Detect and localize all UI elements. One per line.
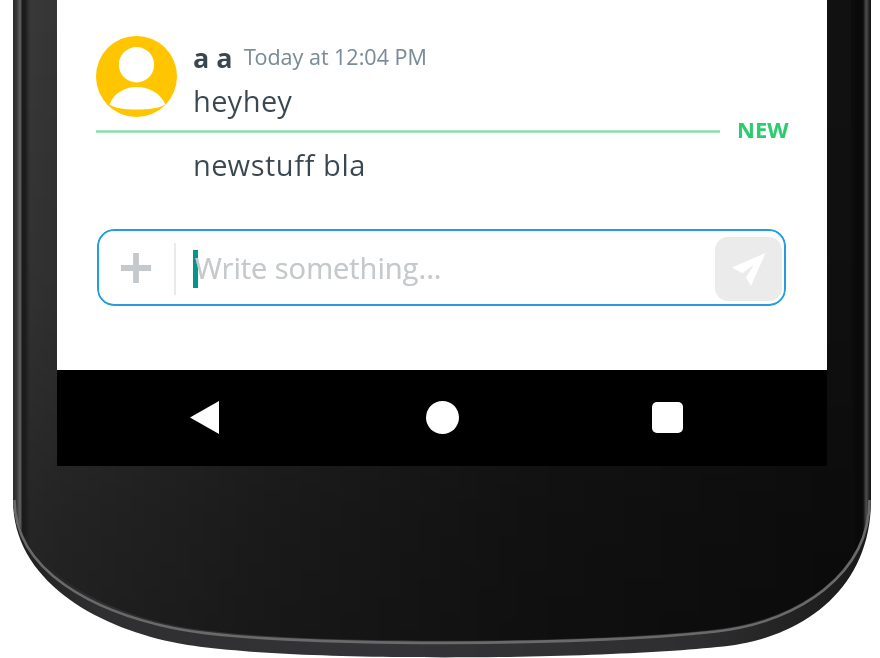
staticText: NEW bbox=[737, 114, 789, 144]
staticText: Write something... bbox=[195, 248, 442, 287]
button[interactable]: Home bbox=[411, 386, 473, 448]
button[interactable]: Back bbox=[173, 386, 235, 448]
button[interactable]: Add attachment bbox=[114, 246, 158, 290]
staticText: Today at 12:04 PM bbox=[244, 42, 427, 71]
staticText: a a bbox=[193, 39, 233, 76]
staticText: newstuff bla bbox=[193, 145, 366, 184]
staticText: heyhey bbox=[193, 81, 293, 120]
button[interactable]: Profile picture bbox=[96, 36, 177, 117]
button[interactable]: Add attachment bbox=[97, 229, 786, 306]
button[interactable]: Recent apps bbox=[636, 386, 698, 448]
button[interactable]: Send bbox=[715, 237, 782, 301]
